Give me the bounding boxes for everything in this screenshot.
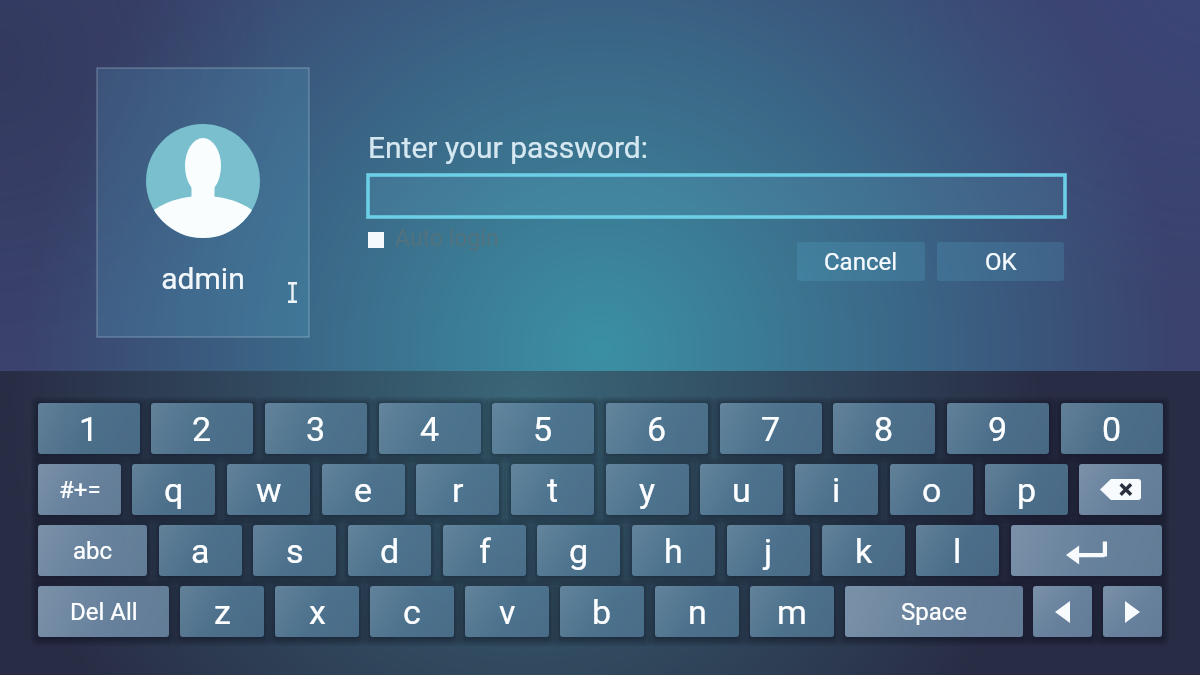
button[interactable]: r bbox=[416, 464, 499, 515]
staticText: 7 bbox=[761, 409, 781, 449]
button[interactable]: 1 bbox=[38, 403, 140, 454]
staticText: a bbox=[191, 531, 210, 571]
button[interactable]: Enter bbox=[1011, 525, 1162, 576]
staticText: Space bbox=[901, 598, 968, 626]
staticText: y bbox=[639, 470, 656, 510]
staticText: i bbox=[832, 470, 841, 510]
staticText: admin bbox=[161, 261, 245, 296]
button[interactable]: t bbox=[511, 464, 594, 515]
staticText: t bbox=[547, 470, 559, 510]
button[interactable]: 0 bbox=[1061, 403, 1163, 454]
staticText: 9 bbox=[988, 409, 1008, 449]
staticText: n bbox=[688, 592, 707, 632]
button[interactable]: c bbox=[370, 586, 454, 637]
button[interactable]: n bbox=[655, 586, 739, 637]
button[interactable]: p bbox=[985, 464, 1068, 515]
button[interactable] bbox=[368, 175, 1065, 217]
button[interactable]: Space bbox=[845, 586, 1023, 637]
staticText: g bbox=[569, 531, 589, 571]
button[interactable]: 4 bbox=[379, 403, 481, 454]
staticText: z bbox=[214, 592, 231, 632]
button[interactable]: w bbox=[227, 464, 310, 515]
button[interactable]: o bbox=[890, 464, 973, 515]
button[interactable]: i bbox=[795, 464, 878, 515]
staticText: v bbox=[499, 592, 516, 632]
button[interactable]: k bbox=[822, 525, 905, 576]
staticText: OK bbox=[985, 248, 1017, 276]
staticText: 6 bbox=[647, 409, 667, 449]
staticText: b bbox=[592, 592, 612, 632]
staticText: w bbox=[256, 470, 282, 510]
button[interactable]: Cancel bbox=[797, 242, 925, 281]
button[interactable]: OK bbox=[937, 242, 1064, 281]
button[interactable]: m bbox=[750, 586, 834, 637]
staticText: Del All bbox=[70, 598, 138, 626]
staticText: f bbox=[479, 531, 491, 571]
staticText: s bbox=[286, 531, 304, 571]
button[interactable]: Auto login bbox=[362, 224, 507, 254]
button[interactable]: abc bbox=[38, 525, 147, 576]
button[interactable]: 7 bbox=[720, 403, 822, 454]
staticText: Cancel bbox=[824, 248, 898, 276]
button[interactable]: u bbox=[700, 464, 783, 515]
staticText: u bbox=[732, 470, 751, 510]
staticText: Auto login bbox=[395, 225, 499, 252]
staticText: c bbox=[403, 592, 421, 632]
button[interactable]: a bbox=[159, 525, 242, 576]
staticText: abc bbox=[73, 537, 113, 565]
button[interactable]: b bbox=[560, 586, 644, 637]
staticText: Enter your password: bbox=[368, 130, 649, 165]
button[interactable]: Cursor right bbox=[1103, 586, 1162, 637]
button[interactable]: 9 bbox=[947, 403, 1049, 454]
staticText: m bbox=[777, 592, 807, 632]
button[interactable]: f bbox=[443, 525, 526, 576]
staticText: 2 bbox=[192, 409, 212, 449]
staticText: e bbox=[354, 470, 373, 510]
button[interactable]: j bbox=[727, 525, 810, 576]
button[interactable]: y bbox=[606, 464, 689, 515]
button[interactable]: v bbox=[465, 586, 549, 637]
staticText: o bbox=[922, 470, 942, 510]
staticText: k bbox=[855, 531, 873, 571]
button[interactable]: x bbox=[275, 586, 359, 637]
button[interactable]: Cursor left bbox=[1033, 586, 1092, 637]
staticText: h bbox=[664, 531, 683, 571]
button[interactable]: s bbox=[253, 525, 336, 576]
staticText: #+= bbox=[59, 476, 101, 504]
staticText: 1 bbox=[79, 409, 99, 449]
button[interactable]: Del All bbox=[38, 586, 169, 637]
button[interactable]: l bbox=[916, 525, 999, 576]
button[interactable]: #+= bbox=[38, 464, 121, 515]
staticText: l bbox=[953, 531, 962, 571]
button[interactable]: admin bbox=[97, 68, 309, 337]
button[interactable]: 5 bbox=[492, 403, 594, 454]
button[interactable]: q bbox=[132, 464, 215, 515]
button[interactable]: 2 bbox=[151, 403, 253, 454]
staticText: 8 bbox=[874, 409, 894, 449]
button[interactable]: 8 bbox=[833, 403, 935, 454]
button[interactable]: Backspace bbox=[1079, 464, 1162, 515]
staticText: 5 bbox=[533, 409, 553, 449]
button[interactable]: d bbox=[348, 525, 431, 576]
staticText: q bbox=[164, 470, 184, 510]
staticText: x bbox=[309, 592, 326, 632]
staticText: p bbox=[1017, 470, 1037, 510]
button[interactable]: 3 bbox=[265, 403, 367, 454]
button[interactable]: z bbox=[180, 586, 264, 637]
staticText: j bbox=[764, 531, 773, 571]
button[interactable]: e bbox=[322, 464, 405, 515]
staticText: 0 bbox=[1102, 409, 1122, 449]
staticText: r bbox=[452, 470, 464, 510]
staticText: d bbox=[380, 531, 400, 571]
staticText: 3 bbox=[306, 409, 326, 449]
button[interactable]: h bbox=[632, 525, 715, 576]
button[interactable]: 6 bbox=[606, 403, 708, 454]
button[interactable]: g bbox=[537, 525, 620, 576]
staticText: 4 bbox=[420, 409, 440, 449]
